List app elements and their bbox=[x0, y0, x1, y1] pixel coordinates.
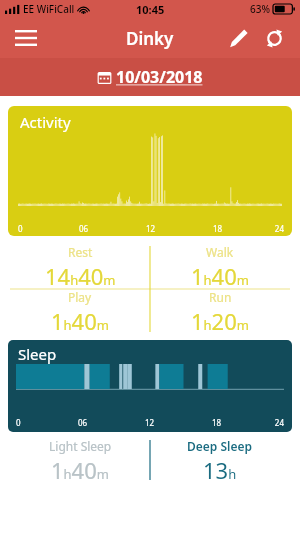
staticText: Walk bbox=[206, 244, 234, 260]
staticText: 63% bbox=[250, 2, 270, 16]
button[interactable]: Run bbox=[150, 289, 290, 334]
staticText: 1h40m bbox=[51, 455, 109, 484]
button[interactable]: Deep Sleep bbox=[150, 438, 290, 484]
staticText: 1h40m bbox=[51, 306, 109, 334]
staticText: 24 bbox=[250, 417, 284, 428]
staticText: 18 bbox=[183, 417, 250, 428]
button[interactable]: Sleep bbox=[8, 340, 292, 432]
button[interactable]: Light Sleep bbox=[10, 438, 150, 484]
staticText: 1h20m bbox=[191, 306, 249, 334]
staticText: EE WiFiCall bbox=[23, 2, 75, 16]
staticText: Rest bbox=[68, 244, 93, 260]
staticText: 06 bbox=[49, 417, 116, 428]
button[interactable]: Activity bbox=[8, 106, 292, 236]
button[interactable]: Sync bbox=[256, 20, 292, 56]
staticText: 18 bbox=[184, 223, 251, 234]
button[interactable]: Play bbox=[10, 289, 150, 334]
button[interactable]: 10/03/2018 bbox=[0, 58, 300, 96]
staticText: 24 bbox=[251, 223, 284, 234]
button[interactable]: Edit bbox=[220, 20, 256, 56]
staticText: 12 bbox=[117, 223, 184, 234]
staticText: 0 bbox=[18, 223, 50, 234]
staticText: 0 bbox=[16, 417, 49, 428]
button[interactable]: Walk bbox=[150, 244, 290, 289]
button[interactable]: Rest bbox=[10, 244, 150, 289]
staticText: Play bbox=[68, 289, 92, 305]
button[interactable]: Menu bbox=[8, 20, 44, 56]
staticText: 1h40m bbox=[191, 261, 249, 289]
staticText: 12 bbox=[116, 417, 183, 428]
staticText: 13h bbox=[203, 455, 237, 484]
staticText: 06 bbox=[50, 223, 117, 234]
staticText: Deep Sleep bbox=[187, 438, 253, 454]
staticText: Sleep bbox=[18, 344, 57, 364]
staticText: Run bbox=[209, 289, 232, 305]
staticText: Activity bbox=[20, 112, 71, 132]
staticText: 10/03/2018 bbox=[116, 66, 203, 88]
staticText: Dinky bbox=[126, 27, 174, 50]
staticText: 10:45 bbox=[136, 2, 165, 17]
staticText: 14h40m bbox=[45, 261, 116, 289]
staticText: Light Sleep bbox=[49, 438, 112, 454]
